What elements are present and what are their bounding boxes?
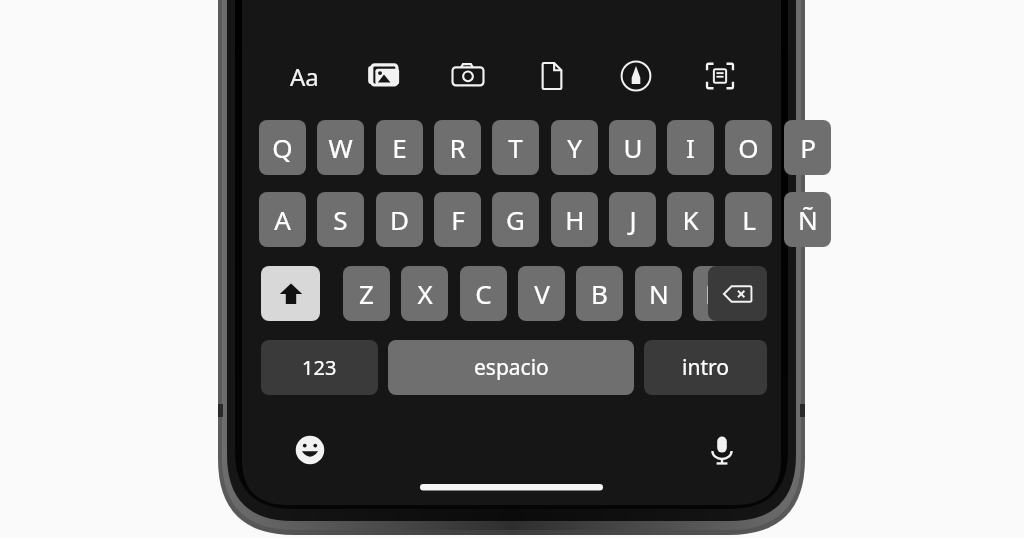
button[interactable]: T <box>492 120 539 175</box>
staticText: Y <box>567 130 582 165</box>
button[interactable]: O <box>725 120 772 175</box>
staticText: Z <box>359 276 374 311</box>
button[interactable]: espacio <box>388 340 634 395</box>
button[interactable]: C <box>460 266 507 321</box>
staticText: B <box>591 276 608 311</box>
staticText: S <box>333 202 348 237</box>
button[interactable]: K <box>667 192 714 247</box>
staticText: E <box>392 130 407 165</box>
button[interactable]: V <box>518 266 565 321</box>
staticText: intro <box>682 353 729 382</box>
staticText: Q <box>272 130 293 165</box>
button[interactable]: N <box>635 266 682 321</box>
button[interactable]: Backspace <box>708 266 767 321</box>
button[interactable]: B <box>576 266 623 321</box>
button[interactable]: L <box>725 192 772 247</box>
staticText: R <box>449 130 466 165</box>
staticText: F <box>451 202 465 237</box>
button[interactable]: M <box>693 266 740 321</box>
staticText: P <box>800 130 816 165</box>
button[interactable]: Markup <box>614 56 658 96</box>
staticText: V <box>534 276 550 311</box>
staticText: L <box>742 202 756 237</box>
staticText: H <box>565 202 585 237</box>
staticText: D <box>390 202 409 237</box>
staticText: N <box>649 276 669 311</box>
staticText: W <box>328 130 353 165</box>
button[interactable]: Shift <box>261 266 320 321</box>
button[interactable]: H <box>551 192 598 247</box>
staticText: J <box>629 202 637 237</box>
button[interactable]: D <box>376 192 423 247</box>
button[interactable]: Document <box>530 56 574 96</box>
button[interactable]: Emoji <box>288 428 332 472</box>
button[interactable]: 123 <box>261 340 378 395</box>
staticText: 123 <box>302 354 337 381</box>
staticText: A <box>274 202 291 237</box>
button[interactable]: Z <box>343 266 390 321</box>
staticText: T <box>508 130 523 165</box>
button[interactable]: A <box>259 192 306 247</box>
button[interactable]: Aa <box>278 56 330 96</box>
button[interactable]: Dictation <box>700 428 744 472</box>
staticText: Ñ <box>798 202 818 237</box>
button[interactable]: Photos <box>362 56 406 96</box>
button[interactable]: X <box>401 266 448 321</box>
button[interactable]: Q <box>259 120 306 175</box>
staticText: I <box>686 130 695 165</box>
button[interactable]: W <box>317 120 364 175</box>
staticText: X <box>417 276 433 311</box>
button[interactable]: U <box>609 120 656 175</box>
staticText: Aa <box>290 60 319 93</box>
staticText: U <box>623 130 643 165</box>
button[interactable]: E <box>376 120 423 175</box>
staticText: G <box>506 202 525 237</box>
staticText: M <box>705 276 729 311</box>
button[interactable]: Y <box>551 120 598 175</box>
button[interactable]: P <box>784 120 831 175</box>
button[interactable]: G <box>492 192 539 247</box>
button[interactable]: F <box>434 192 481 247</box>
staticText: K <box>682 202 699 237</box>
staticText: O <box>738 130 759 165</box>
button[interactable]: R <box>434 120 481 175</box>
button[interactable]: I <box>667 120 714 175</box>
button[interactable]: intro <box>644 340 767 395</box>
staticText: C <box>475 276 492 311</box>
button[interactable]: Scan <box>698 56 742 96</box>
staticText: espacio <box>474 353 549 382</box>
button[interactable]: S <box>317 192 364 247</box>
button[interactable]: Camera <box>446 56 490 96</box>
button[interactable]: J <box>609 192 656 247</box>
button[interactable]: Ñ <box>784 192 831 247</box>
